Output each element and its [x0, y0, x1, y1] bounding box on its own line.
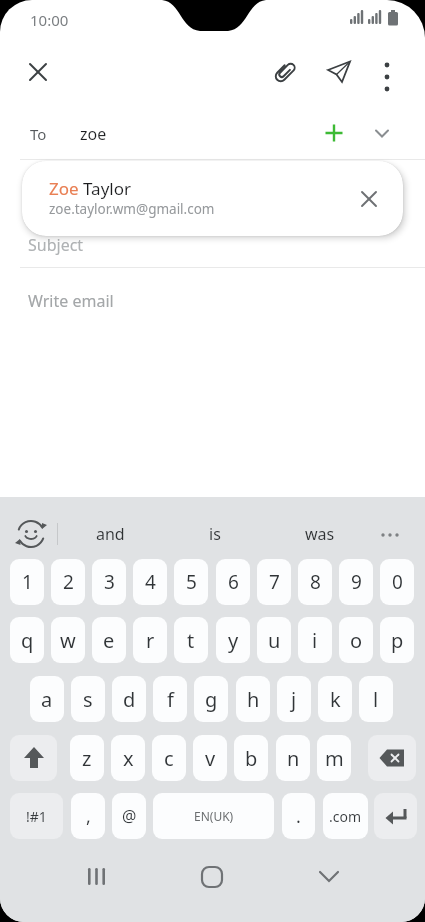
button[interactable]	[308, 860, 350, 894]
staticText: 1	[22, 569, 33, 595]
staticText: h	[247, 686, 260, 713]
staticText: 9	[351, 569, 362, 595]
staticText: n	[287, 745, 300, 772]
button[interactable]: q	[10, 617, 44, 663]
staticText: @	[122, 805, 137, 827]
button[interactable]	[355, 185, 383, 213]
button[interactable]: and	[80, 519, 140, 549]
button[interactable]: 0	[380, 559, 414, 605]
staticText: .com	[329, 807, 362, 826]
button[interactable]: e	[92, 617, 126, 663]
button[interactable]: v	[193, 735, 227, 781]
staticText: 10:00	[30, 10, 69, 30]
button[interactable]: t	[174, 617, 208, 663]
button[interactable]	[368, 735, 416, 781]
button[interactable]: .	[282, 793, 315, 839]
button[interactable]: o	[339, 617, 373, 663]
button[interactable]: 4	[133, 559, 167, 605]
button[interactable]: p	[380, 617, 414, 663]
button[interactable]: y	[216, 617, 250, 663]
button[interactable]: 5	[174, 559, 208, 605]
button[interactable]: g	[194, 676, 228, 722]
button[interactable]: s	[71, 676, 105, 722]
button[interactable]: was	[290, 519, 350, 549]
button[interactable]: 2	[51, 559, 85, 605]
button[interactable]: 8	[298, 559, 332, 605]
button[interactable]: a	[30, 676, 64, 722]
staticText: 3	[104, 569, 115, 595]
staticText: a	[41, 686, 53, 713]
staticText: l	[373, 686, 379, 713]
button[interactable]	[376, 519, 406, 549]
staticText: zoe	[80, 123, 107, 145]
staticText: was	[305, 523, 335, 545]
button[interactable]: !#1	[10, 793, 63, 839]
button[interactable]: EN(UK)	[153, 793, 274, 839]
button[interactable]: Zoe Taylor	[22, 161, 403, 236]
staticText: r	[146, 627, 155, 654]
staticText: q	[21, 627, 34, 654]
button[interactable]: z	[70, 735, 104, 781]
button[interactable]: h	[236, 676, 270, 722]
button[interactable]: u	[257, 617, 291, 663]
staticText: 7	[269, 569, 280, 595]
staticText: zoe.taylor.wm@gmail.com	[49, 200, 215, 218]
staticText: Subject	[28, 234, 84, 256]
button[interactable]	[368, 119, 396, 147]
button[interactable]	[10, 735, 57, 781]
button[interactable]: 7	[257, 559, 291, 605]
button[interactable]: k	[318, 676, 352, 722]
button[interactable]: c	[152, 735, 186, 781]
button[interactable]: ,	[71, 793, 105, 839]
staticText: g	[205, 686, 218, 713]
button[interactable]: l	[359, 676, 393, 722]
button[interactable]	[13, 516, 49, 552]
button[interactable]	[191, 860, 233, 894]
staticText: .	[296, 804, 301, 829]
button[interactable]: j	[277, 676, 311, 722]
staticText: k	[330, 686, 341, 713]
staticText: 0	[392, 569, 403, 595]
button[interactable]: m	[317, 735, 351, 781]
staticText: 2	[63, 569, 74, 595]
staticText: Zoe Taylor	[49, 177, 132, 200]
button[interactable]: i	[298, 617, 332, 663]
staticText: u	[268, 627, 281, 654]
button[interactable]	[76, 860, 118, 894]
staticText: c	[164, 745, 174, 772]
staticText: f	[167, 686, 174, 713]
button[interactable]: b	[234, 735, 268, 781]
button[interactable]	[22, 56, 54, 88]
button[interactable]	[320, 119, 348, 147]
staticText: x	[123, 745, 134, 772]
staticText: s	[83, 686, 93, 713]
staticText: Write email	[28, 290, 114, 312]
staticText: !#1	[26, 807, 47, 826]
button[interactable]	[325, 58, 353, 86]
button[interactable]: 6	[216, 559, 250, 605]
staticText: EN(UK)	[194, 808, 234, 824]
staticText: m	[325, 745, 344, 772]
button[interactable]: f	[153, 676, 187, 722]
button[interactable]: is	[185, 519, 245, 549]
staticText: b	[245, 745, 258, 772]
button[interactable]: x	[111, 735, 145, 781]
button[interactable]: .com	[323, 793, 368, 839]
staticText: 8	[310, 569, 321, 595]
staticText: and	[96, 523, 125, 545]
staticText: d	[123, 686, 136, 713]
button[interactable]: @	[112, 793, 146, 839]
button[interactable]: 3	[92, 559, 126, 605]
staticText: To	[30, 124, 47, 144]
button[interactable]: n	[276, 735, 310, 781]
staticText: y	[228, 627, 239, 654]
button[interactable]: w	[51, 617, 85, 663]
staticText: p	[391, 627, 404, 654]
button[interactable]	[376, 58, 398, 92]
button[interactable]: 1	[10, 559, 44, 605]
button[interactable]: 9	[339, 559, 373, 605]
button[interactable]: d	[112, 676, 146, 722]
button[interactable]	[271, 58, 299, 86]
button[interactable]: r	[133, 617, 167, 663]
button[interactable]	[374, 793, 417, 839]
